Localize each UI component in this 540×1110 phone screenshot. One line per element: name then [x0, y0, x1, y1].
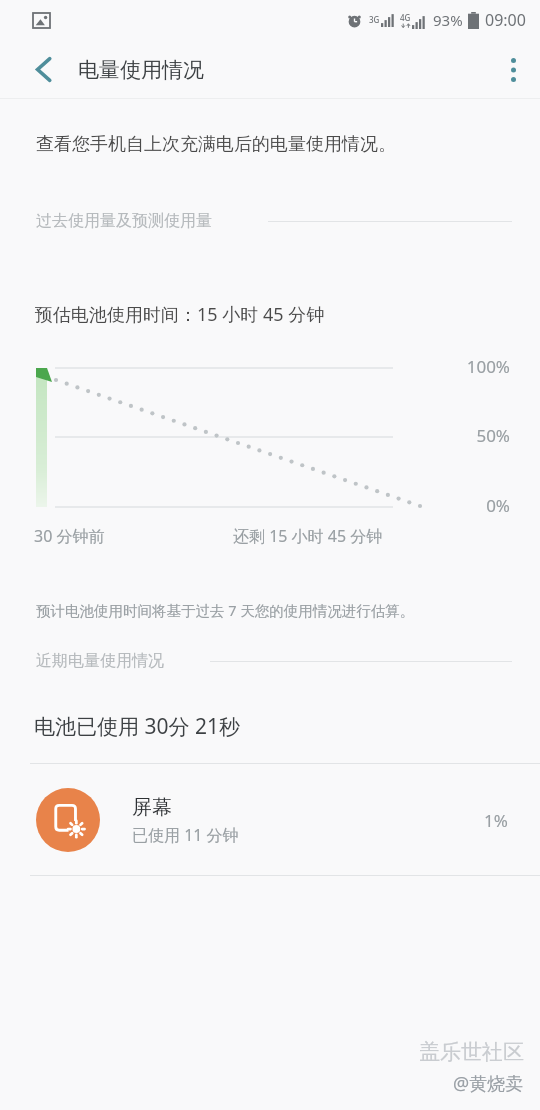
staticText: 预计电池使用时间将基于过去 7 天您的使用情况进行估算。 — [36, 600, 415, 620]
staticText: 已使用 11 分钟 — [132, 824, 239, 846]
staticText: 50% — [398, 424, 510, 447]
staticText: 还剩 15 小时 45 分钟 — [233, 525, 383, 547]
staticText: 近期电量使用情况 — [36, 651, 164, 671]
staticText: 09:00 — [485, 9, 526, 31]
button[interactable]: Back — [18, 40, 70, 99]
button[interactable]: 屏幕 — [0, 764, 540, 876]
staticText: 1% — [484, 809, 508, 832]
staticText: 30 分钟前 — [34, 525, 105, 547]
staticText: 查看您手机自上次充满电后的电量使用情况。 — [36, 133, 396, 156]
staticText: 4G — [400, 12, 411, 23]
staticText: 3G — [369, 14, 380, 25]
staticText: 盖乐世社区 — [419, 1039, 524, 1065]
staticText: 电量使用情况 — [78, 57, 204, 83]
staticText: 100% — [398, 355, 510, 378]
staticText: 预估电池使用时间：15 小时 45 分钟 — [35, 302, 325, 327]
button[interactable]: More options — [486, 40, 540, 99]
staticText: 电池已使用 30分 21秒 — [34, 712, 240, 741]
staticText: 屏幕 — [132, 795, 172, 820]
staticText: 过去使用量及预测使用量 — [36, 211, 212, 231]
staticText: 93% — [433, 10, 463, 30]
staticText: 0% — [398, 494, 510, 517]
staticText: @黄烧卖 — [453, 1071, 524, 1096]
